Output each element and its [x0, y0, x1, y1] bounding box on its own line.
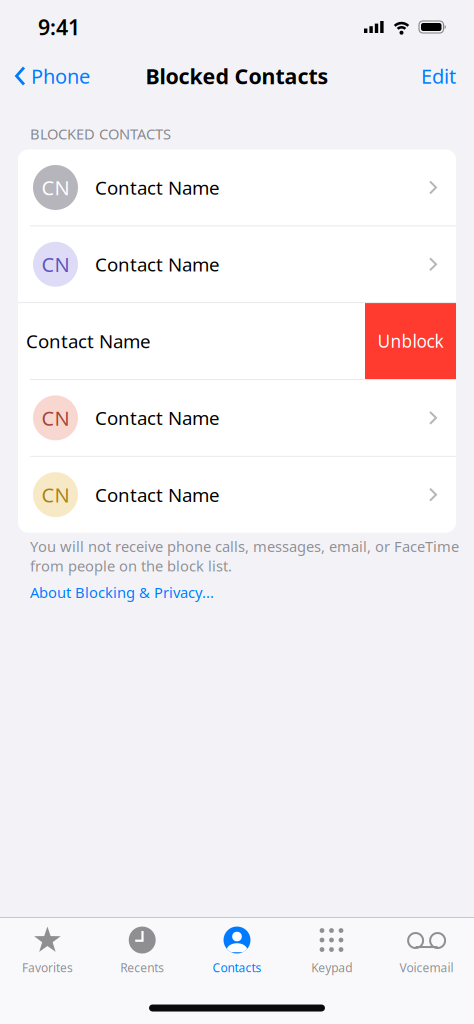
staticText: Contact Name	[95, 405, 220, 430]
button[interactable]: Keypad	[284, 912, 379, 983]
button[interactable]: Voicemail	[379, 912, 474, 983]
staticText: from people on the block list.	[30, 556, 232, 576]
staticText: Recents	[120, 959, 164, 975]
staticText: Blocked Contacts	[145, 62, 328, 90]
button[interactable]: About Blocking & Privacy...	[30, 576, 214, 602]
staticText: Favorites	[22, 959, 73, 975]
button[interactable]: CN	[18, 149, 456, 225]
staticText: CN	[41, 481, 69, 508]
staticText: CN	[41, 174, 69, 201]
staticText: Phone	[31, 63, 90, 89]
staticText: CN	[41, 405, 69, 431]
button[interactable]: Unblock	[365, 303, 456, 379]
button[interactable]: Edit	[421, 63, 474, 89]
staticText: BLOCKED CONTACTS	[30, 124, 171, 143]
button[interactable]: CN	[18, 380, 456, 456]
staticText: Contact Name	[95, 175, 220, 200]
staticText: About Blocking & Privacy...	[30, 583, 214, 602]
staticText: Contact Name	[95, 252, 220, 277]
staticText: Contacts	[212, 959, 261, 975]
button[interactable]: Phone	[0, 63, 90, 89]
button[interactable]: Contacts	[190, 912, 284, 983]
staticText: Voicemail	[400, 959, 454, 975]
staticText: Contact Name	[95, 482, 220, 507]
staticText: CN	[41, 251, 69, 278]
button[interactable]: Recents	[95, 912, 190, 983]
staticText: Keypad	[311, 959, 352, 975]
staticText: Contact Name	[26, 329, 151, 353]
staticText: Unblock	[377, 330, 443, 353]
button[interactable]: Favorites	[0, 912, 95, 983]
button[interactable]: CN	[18, 226, 456, 302]
staticText: You will not receive phone calls, messag…	[30, 537, 459, 556]
button[interactable]: CN	[18, 457, 456, 533]
staticText: Edit	[421, 63, 456, 89]
staticText: 9:41	[38, 13, 80, 41]
